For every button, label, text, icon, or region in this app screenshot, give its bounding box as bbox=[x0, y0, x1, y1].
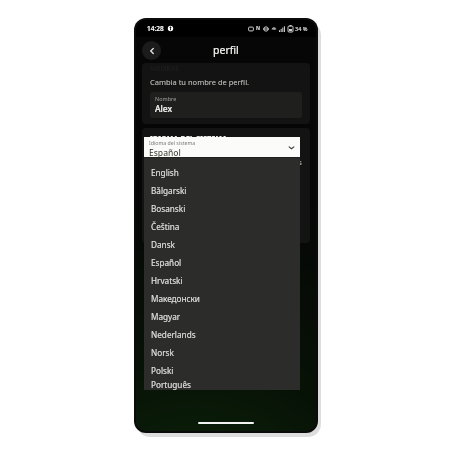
staticText: Idioma del sistema bbox=[149, 139, 196, 146]
button[interactable]: English bbox=[144, 163, 300, 181]
staticText: Magyar bbox=[151, 311, 181, 322]
button[interactable]: Nombre bbox=[150, 92, 302, 118]
other: Expand language list bbox=[288, 144, 295, 151]
staticText: Hrvatski bbox=[151, 275, 183, 286]
staticText: Português bbox=[151, 379, 191, 390]
staticText: English bbox=[151, 167, 179, 178]
button[interactable]: Bǎlgarski bbox=[144, 181, 300, 199]
staticText: Español bbox=[151, 257, 182, 268]
staticText: Nederlands bbox=[151, 329, 196, 340]
staticText: Bosanski bbox=[151, 203, 186, 214]
button[interactable]: Македонски bbox=[144, 289, 300, 307]
staticText: Dansk bbox=[151, 239, 175, 250]
button[interactable]: Português bbox=[144, 379, 300, 390]
staticText: Čeština bbox=[151, 221, 180, 232]
staticText: Norsk bbox=[151, 347, 174, 358]
staticText: Cambia tu nombre de perfil. bbox=[150, 77, 250, 87]
button[interactable]: Español bbox=[144, 253, 300, 271]
button[interactable]: Bosanski bbox=[144, 199, 300, 217]
staticText: 34 % bbox=[295, 25, 308, 32]
button[interactable]: Idioma del sistema bbox=[144, 137, 300, 158]
button[interactable]: Nederlands bbox=[144, 325, 300, 343]
button[interactable]: Dansk bbox=[144, 235, 300, 253]
staticText: N bbox=[256, 25, 261, 32]
button[interactable]: Back bbox=[142, 41, 161, 60]
staticText: Polski bbox=[151, 365, 174, 376]
staticText: NOMBRE bbox=[150, 64, 179, 73]
staticText: Македонски bbox=[151, 293, 200, 304]
staticText: Nombre bbox=[155, 95, 177, 102]
button[interactable]: Polski bbox=[144, 361, 300, 379]
staticText: Bǎlgarski bbox=[151, 185, 187, 196]
button[interactable]: Magyar bbox=[144, 307, 300, 325]
button[interactable]: Čeština bbox=[144, 217, 300, 235]
staticText: perfil bbox=[213, 43, 239, 57]
staticText: Esta opción cambia el idioma del sistema… bbox=[150, 147, 302, 177]
staticText: Alex bbox=[155, 103, 173, 115]
staticText: 14:28 bbox=[147, 24, 164, 33]
staticText: Español bbox=[149, 147, 181, 158]
button[interactable]: Norsk bbox=[144, 343, 300, 361]
staticText: IDIOMA DEL SISTEMA bbox=[150, 134, 228, 143]
button[interactable]: Hrvatski bbox=[144, 271, 300, 289]
